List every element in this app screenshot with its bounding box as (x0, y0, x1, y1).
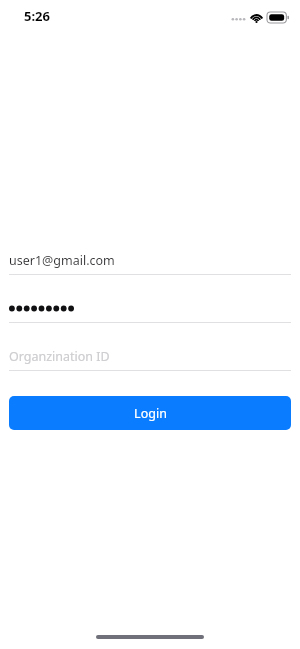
staticText: user1@gmail.com (9, 252, 115, 269)
button[interactable]: Organzination ID (9, 342, 291, 371)
staticText: 5:26 (24, 7, 50, 25)
button[interactable]: Password (9, 294, 291, 323)
staticText: Organzination ID (9, 348, 110, 365)
staticText: Login (134, 405, 167, 422)
button[interactable]: Login (9, 396, 291, 430)
button[interactable]: user1@gmail.com (9, 246, 291, 275)
